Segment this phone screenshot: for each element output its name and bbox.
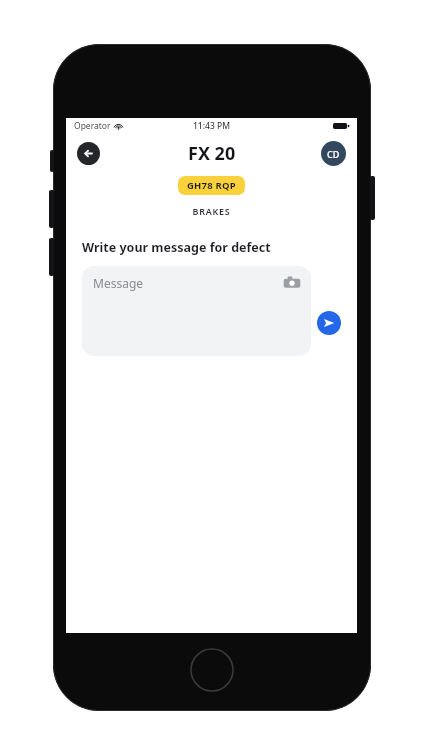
staticText: 11:43 PM xyxy=(193,120,230,132)
button[interactable]: Message xyxy=(82,266,311,356)
staticText: CD xyxy=(327,148,340,160)
button[interactable]: Send xyxy=(317,311,341,335)
button[interactable]: Attach photo xyxy=(283,274,301,292)
staticText: Message xyxy=(93,275,144,291)
button[interactable]: Profile xyxy=(321,141,346,166)
staticText: Write your message for defect xyxy=(82,239,271,256)
staticText: GH78 RQP xyxy=(187,179,236,192)
staticText: FX 20 xyxy=(188,141,236,166)
button[interactable]: Back xyxy=(77,142,100,165)
staticText: Operator xyxy=(74,120,111,132)
staticText: BRAKES xyxy=(66,205,357,217)
button[interactable]: GH78 RQP xyxy=(178,176,245,195)
